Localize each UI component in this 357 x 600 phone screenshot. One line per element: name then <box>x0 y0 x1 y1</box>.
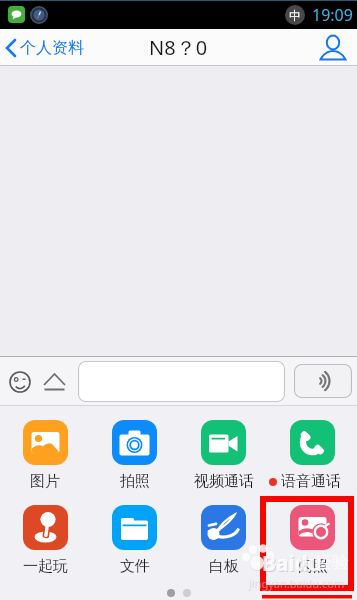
staticText: 图片 <box>30 472 60 491</box>
button[interactable] <box>319 34 347 62</box>
button[interactable]: 一起玩 <box>0 505 90 576</box>
staticText: 拍照 <box>120 472 150 491</box>
staticText: 白板 <box>209 557 239 576</box>
staticText: 文件 <box>120 557 150 576</box>
button[interactable]: 闪照 <box>268 505 357 576</box>
button[interactable]: 拍照 <box>90 420 179 491</box>
staticText: 个人资料 <box>20 38 84 58</box>
button[interactable] <box>8 369 32 393</box>
staticText: 19:09 <box>312 4 353 26</box>
button[interactable]: 白板 <box>179 505 268 576</box>
staticText: 语音通话 <box>281 472 341 491</box>
staticText: Baidu <box>262 549 322 578</box>
button[interactable] <box>78 361 285 402</box>
staticText: 一起玩 <box>23 557 68 576</box>
staticText: 视频通话 <box>194 472 254 491</box>
button[interactable]: 视频通话 <box>179 420 268 491</box>
button[interactable]: 语音通话 <box>268 420 357 491</box>
staticText: N8？0 <box>149 34 208 61</box>
button[interactable] <box>294 364 352 398</box>
button[interactable] <box>42 368 68 394</box>
button[interactable]: 个人资料 <box>0 38 84 58</box>
staticText: jingyan.baidu.com <box>249 576 345 591</box>
button[interactable]: 文件 <box>90 505 179 576</box>
staticText: 经验 <box>315 552 349 573</box>
staticText: Baidu <box>263 550 323 579</box>
button[interactable]: 图片 <box>0 420 90 491</box>
staticText: 中 <box>289 8 301 23</box>
staticText: 闪照 <box>298 557 328 576</box>
